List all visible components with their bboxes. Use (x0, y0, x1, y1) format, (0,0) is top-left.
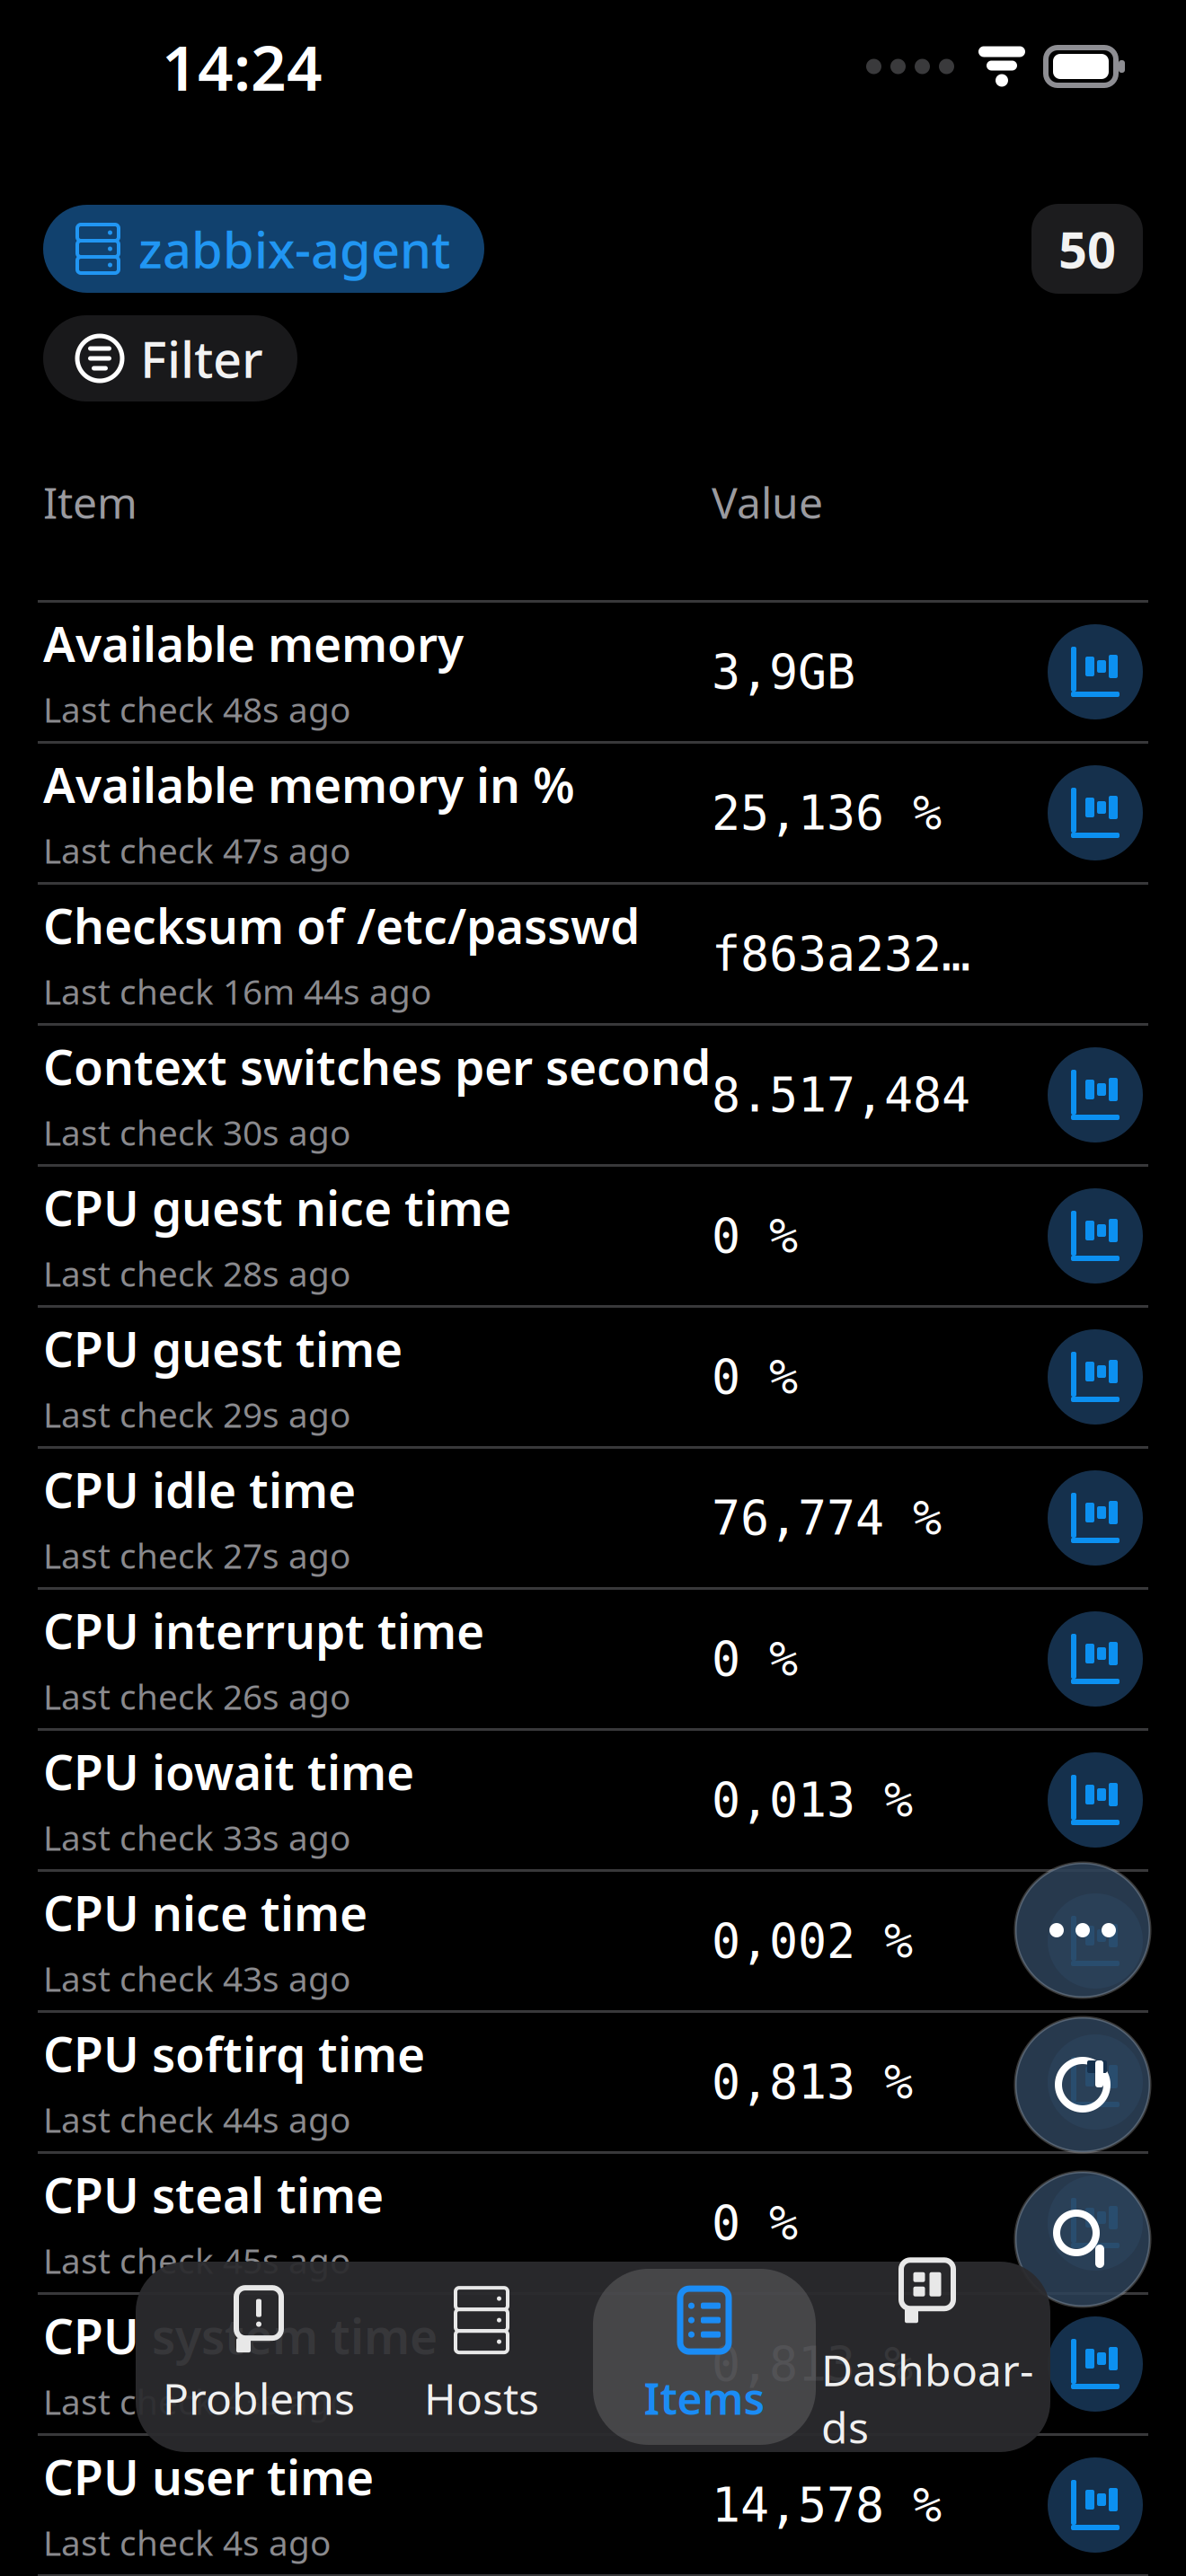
staticText: Last check 27s ago (43, 1532, 350, 1578)
button[interactable]: Filter (43, 315, 297, 401)
staticText: 8.517,484 (712, 1068, 970, 1122)
staticText: 14,578 % (712, 2478, 942, 2532)
button[interactable]: Dashboards (816, 2269, 1039, 2445)
staticText: 0,813 % (712, 2337, 913, 2391)
button[interactable]: Items (593, 2269, 816, 2445)
button[interactable]: Context switches per second (0, 1026, 1186, 1167)
staticText: 0 % (712, 2196, 798, 2250)
staticText: zabbix-agent (138, 215, 450, 282)
staticText: Last check 28s ago (43, 1250, 350, 1296)
button[interactable]: CPU steal time (0, 2154, 1186, 2295)
button[interactable]: Show graph (1048, 2034, 1143, 2130)
staticText: 0,002 % (712, 1914, 913, 1968)
button[interactable]: CPU user time (0, 2436, 1186, 2576)
button[interactable]: CPU interrupt time (0, 1590, 1186, 1731)
button[interactable]: 50 (1031, 204, 1143, 294)
staticText: Last check 47s ago (43, 827, 350, 873)
staticText: Context switches per second (43, 1035, 711, 1098)
staticText: 0 % (712, 1632, 798, 1686)
staticText: 3,9GB (712, 645, 855, 699)
staticText: 0 % (712, 1209, 798, 1263)
staticText: CPU guest time (43, 1317, 403, 1380)
staticText: Last check 48s ago (43, 686, 350, 732)
staticText: CPU user time (43, 2445, 374, 2508)
staticText: Value (712, 473, 823, 531)
button[interactable]: Available memory (0, 603, 1186, 744)
staticText: CPU nice time (43, 1881, 367, 1944)
button[interactable]: CPU nice time (0, 1872, 1186, 2013)
button[interactable]: More options (1015, 1863, 1150, 1998)
staticText: Last check 44s ago (43, 2096, 350, 2142)
button[interactable]: Hosts (370, 2269, 593, 2445)
button[interactable]: Refresh (1015, 2017, 1150, 2152)
staticText: Last check 30s ago (43, 1109, 350, 1155)
staticText: CPU steal time (43, 2163, 384, 2226)
staticText: Last check 16m 44s ago (43, 968, 431, 1014)
staticText: CPU guest nice time (43, 1176, 511, 1239)
staticText: CPU interrupt time (43, 1599, 484, 1662)
staticText: 14:24 (162, 25, 323, 108)
staticText: 25,136 % (712, 786, 942, 840)
staticText: Item (43, 473, 137, 531)
staticText: Last check 4s ago (43, 2519, 331, 2565)
button[interactable]: CPU guest time (0, 1308, 1186, 1449)
button[interactable]: CPU softirq time (0, 2013, 1186, 2154)
staticText: 76,774 % (712, 1491, 942, 1545)
staticText: CPU system time (43, 2304, 438, 2367)
staticText: Last check 33s ago (43, 1814, 350, 1860)
staticText: CPU softirq time (43, 2022, 425, 2085)
staticText: CPU iowait time (43, 1740, 414, 1803)
staticText: Dashboards (821, 2341, 1033, 2455)
staticText: Filter (140, 325, 263, 392)
button[interactable]: Search (1015, 2172, 1150, 2307)
staticText: f863a232… (712, 927, 970, 981)
button[interactable]: zabbix-agent (43, 205, 484, 293)
staticText: Last check 43s ago (43, 2378, 350, 2424)
staticText: Last check 45s ago (43, 2237, 350, 2283)
staticText: 0,813 % (712, 2055, 913, 2109)
button[interactable]: Checksum of /etc/passwd (0, 885, 1186, 1026)
button[interactable]: Show graph (1048, 1047, 1143, 1142)
button[interactable]: Show graph (1048, 765, 1143, 860)
staticText: 50 (1058, 215, 1116, 282)
button[interactable]: Show graph (1048, 1470, 1143, 1566)
button[interactable]: Available memory in % (0, 744, 1186, 885)
staticText: 0 % (712, 1350, 798, 1404)
button[interactable]: Show graph (1048, 1188, 1143, 1284)
button[interactable]: Show graph (1048, 1893, 1143, 1989)
button[interactable]: Show graph (1048, 2316, 1143, 2412)
button[interactable]: Show graph (1048, 2175, 1143, 2271)
button[interactable]: Show graph (1048, 1611, 1143, 1707)
button[interactable]: Show graph (1048, 624, 1143, 719)
staticText: 0,013 % (712, 1773, 913, 1827)
staticText: Available memory (43, 612, 464, 675)
button[interactable]: CPU guest nice time (0, 1167, 1186, 1308)
button[interactable]: Problems (147, 2269, 370, 2445)
button[interactable]: Show graph (1048, 1752, 1143, 1848)
button[interactable]: CPU iowait time (0, 1731, 1186, 1872)
button[interactable]: Show graph (1048, 1329, 1143, 1425)
staticText: Checksum of /etc/passwd (43, 894, 640, 957)
staticText: Last check 29s ago (43, 1391, 350, 1437)
staticText: Last check 26s ago (43, 1673, 350, 1719)
staticText: Available memory in % (43, 753, 575, 816)
staticText: Items (644, 2370, 765, 2427)
staticText: Problems (163, 2370, 355, 2427)
button[interactable]: Show graph (1048, 2457, 1143, 2553)
staticText: Last check 43s ago (43, 1955, 350, 2001)
staticText: CPU idle time (43, 1458, 356, 1521)
button[interactable]: CPU idle time (0, 1449, 1186, 1590)
staticText: Hosts (424, 2370, 539, 2427)
button[interactable]: CPU system time (0, 2295, 1186, 2436)
